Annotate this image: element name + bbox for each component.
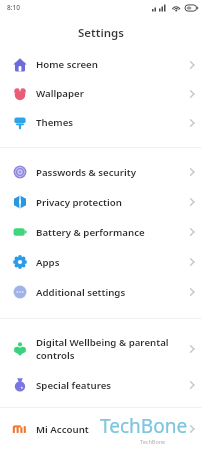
staticText: Digital Wellbeing & parental [36, 336, 169, 349]
staticText: controls [36, 349, 75, 362]
staticText: 8:10 [7, 3, 20, 12]
button[interactable]: Home screen [0, 50, 202, 79]
staticText: Mi Account [36, 423, 89, 436]
button[interactable]: Battery & performance [0, 217, 202, 247]
button[interactable]: Apps [0, 247, 202, 277]
button[interactable]: Wallpaper [0, 79, 202, 108]
button[interactable]: Privacy protection [0, 187, 202, 217]
staticText: Apps [36, 256, 60, 269]
staticText: Themes [36, 116, 74, 129]
staticText: TechBone [140, 438, 166, 445]
staticText: Home screen [36, 58, 98, 71]
staticText: Battery & performance [36, 226, 145, 239]
staticText: Passwords & security [36, 166, 136, 179]
button[interactable]: Digital Wellbeing & parental [0, 329, 202, 368]
button[interactable]: Special features [0, 370, 202, 400]
staticText: Privacy protection [36, 196, 122, 209]
button[interactable]: Themes [0, 108, 202, 137]
staticText: Special features [36, 379, 112, 392]
staticText: Additional settings [36, 286, 126, 299]
button[interactable]: Mi Account [0, 414, 202, 444]
button[interactable]: Additional settings [0, 277, 202, 307]
staticText: Wallpaper [36, 87, 84, 100]
staticText: TechBone [100, 413, 188, 439]
button[interactable]: Passwords & security [0, 157, 202, 187]
staticText: Settings [78, 25, 124, 41]
